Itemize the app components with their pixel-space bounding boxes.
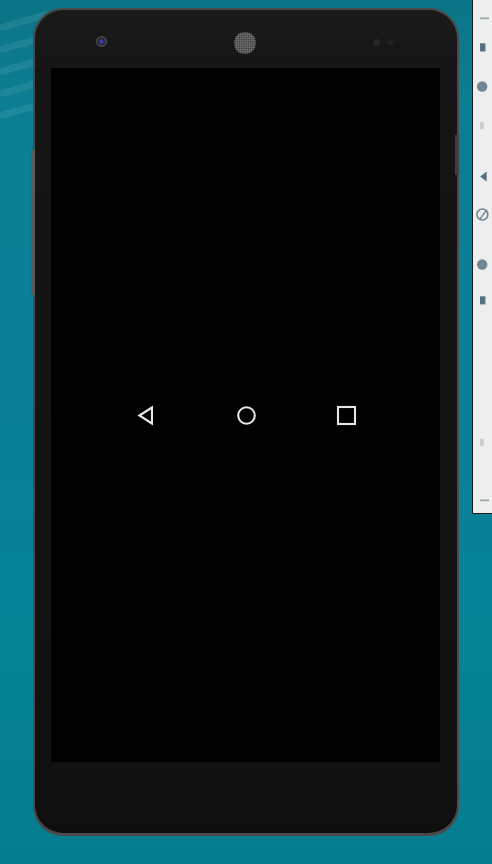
button[interactable]: Home: [223, 392, 269, 438]
button[interactable]: Back: [122, 392, 168, 438]
button[interactable]: Tool: [480, 208, 492, 221]
button[interactable]: Tool: [480, 41, 492, 54]
button[interactable]: Tool: [480, 436, 492, 449]
staticText: LTE: [356, 406, 368, 416]
button[interactable]: Tool: [480, 294, 492, 307]
button[interactable]: Tool: [480, 119, 492, 132]
button[interactable]: Tool: [480, 80, 492, 93]
button[interactable]: Tool: [480, 170, 492, 183]
button[interactable]: Recent apps: [323, 392, 369, 438]
button[interactable]: Tool: [480, 258, 492, 271]
button[interactable]: Tool: [480, 12, 492, 25]
button[interactable]: Tool: [480, 494, 492, 507]
